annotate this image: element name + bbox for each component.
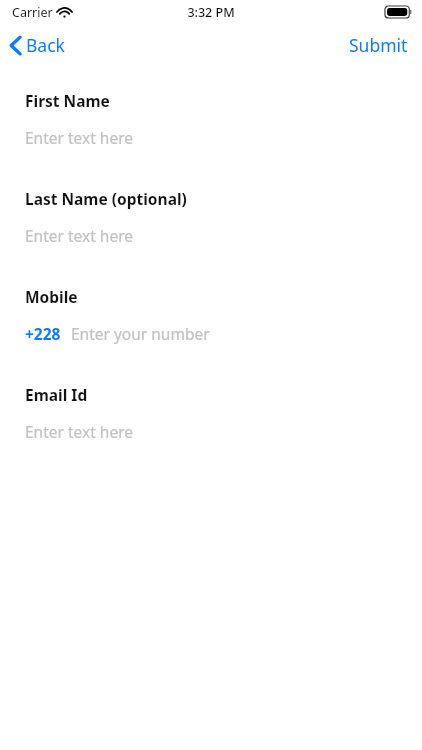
staticText: Back — [26, 33, 65, 57]
staticText: Enter your number — [71, 323, 210, 344]
button[interactable]: Mobile — [0, 286, 422, 344]
staticText: Mobile — [25, 286, 78, 307]
button[interactable]: First Name — [0, 90, 422, 148]
staticText: +228 — [25, 323, 61, 344]
button[interactable]: Back — [0, 29, 77, 61]
staticText: Email Id — [25, 384, 88, 405]
staticText: 3:32 PM — [187, 4, 235, 21]
staticText: Last Name (optional) — [25, 188, 187, 209]
staticText: Carrier — [12, 4, 53, 21]
button[interactable]: Email Id — [0, 384, 422, 442]
staticText: Enter text here — [25, 225, 133, 246]
button[interactable]: Submit — [335, 29, 422, 61]
button[interactable]: Last Name (optional) — [0, 188, 422, 246]
staticText: Enter text here — [25, 421, 133, 442]
staticText: Submit — [349, 33, 408, 57]
staticText: Enter text here — [25, 127, 133, 148]
staticText: First Name — [25, 90, 110, 111]
